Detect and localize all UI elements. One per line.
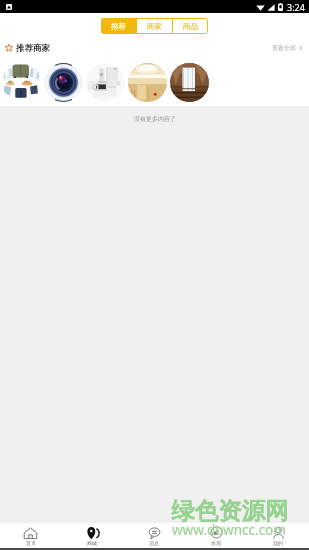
staticText: 我的 xyxy=(273,540,283,546)
button[interactable]: Merchant 1 xyxy=(2,63,41,102)
button[interactable]: 商家 xyxy=(137,18,172,34)
button[interactable]: 消息 xyxy=(123,523,185,548)
button[interactable]: 推荐 xyxy=(101,18,136,34)
button[interactable]: Merchant 5 xyxy=(170,63,209,102)
staticText: www.downcc.com xyxy=(172,521,286,539)
button[interactable]: Merchant 4 xyxy=(128,63,167,102)
staticText: 商品 xyxy=(183,22,198,31)
button[interactable]: Merchant 2 xyxy=(44,63,83,102)
button[interactable]: 商城 xyxy=(61,523,123,548)
staticText: 发现 xyxy=(211,540,221,546)
staticText: 推荐 xyxy=(111,22,126,31)
staticText: 3:24 xyxy=(287,1,305,13)
staticText: 绿色资源网 xyxy=(171,496,289,526)
staticText: 查看全部 xyxy=(272,44,296,52)
staticText: 没有更多内容了 xyxy=(134,115,176,123)
button[interactable]: 商品 xyxy=(173,18,208,34)
button[interactable]: 查看全部 xyxy=(272,44,303,52)
button[interactable]: 首页 xyxy=(0,523,61,548)
staticText: 商城 xyxy=(87,540,97,546)
staticText: 首页 xyxy=(26,540,36,546)
staticText: 商家 xyxy=(147,22,162,31)
staticText: 消息 xyxy=(149,540,159,546)
button[interactable]: 发现 xyxy=(185,523,247,548)
button[interactable]: Merchant 3 xyxy=(86,63,125,102)
staticText: 推荐商家 xyxy=(16,43,50,54)
button[interactable]: 我的 xyxy=(247,523,309,548)
